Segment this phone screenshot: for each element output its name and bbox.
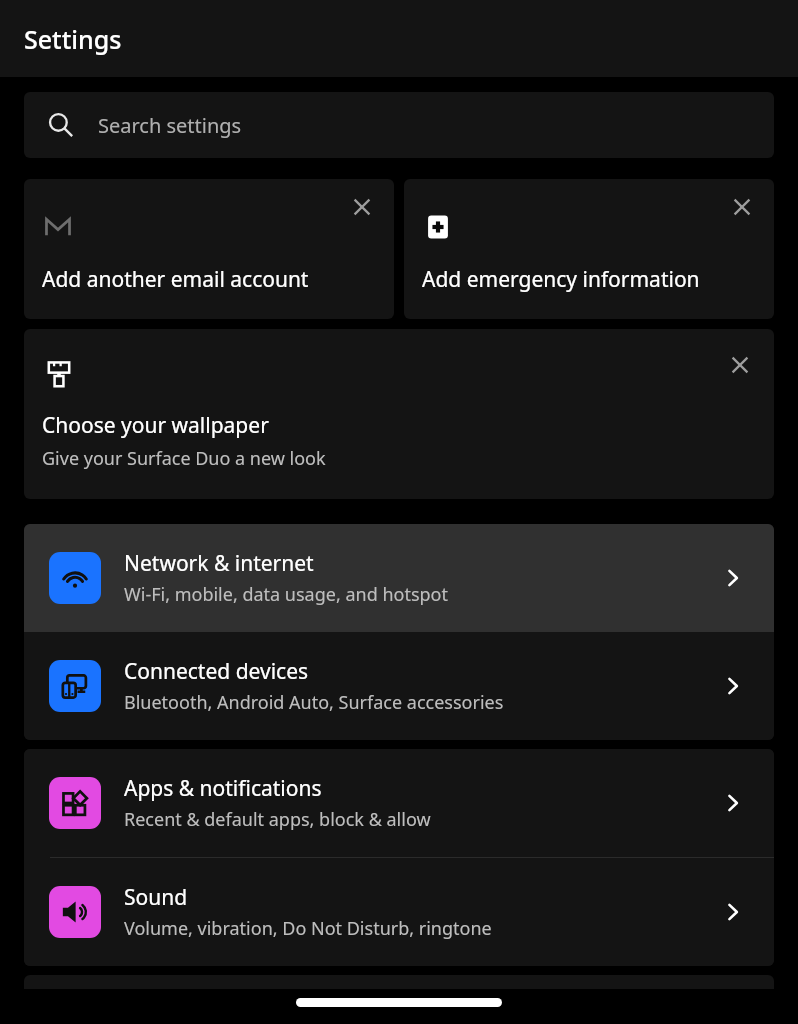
staticText: Volume, vibration, Do Not Disturb, ringt…	[124, 916, 492, 941]
staticText: Apps & notifications	[124, 774, 322, 803]
staticText: Settings	[24, 22, 122, 56]
button[interactable]: Apps & notifications	[24, 749, 774, 857]
button[interactable]: Add another email account	[24, 179, 394, 319]
staticText: Sound	[124, 883, 188, 912]
button[interactable]: Network & internet	[24, 524, 774, 632]
button[interactable]: Connected devices	[24, 632, 774, 740]
staticText: Add another email account	[42, 265, 309, 294]
staticText: Connected devices	[124, 657, 309, 686]
button[interactable]: Dismiss	[720, 185, 764, 229]
button[interactable]: Add emergency information	[404, 179, 774, 319]
staticText: Search settings	[98, 112, 242, 139]
button[interactable]: Choose your wallpaper	[24, 329, 774, 499]
button[interactable]: Search settings	[24, 92, 774, 158]
staticText: Add emergency information	[422, 265, 700, 294]
staticText: Choose your wallpaper	[42, 411, 269, 440]
button[interactable]: Sound	[24, 858, 774, 966]
button[interactable]: Dismiss	[340, 185, 384, 229]
staticText: Recent & default apps, block & allow	[124, 807, 431, 832]
staticText: Wi-Fi, mobile, data usage, and hotspot	[124, 582, 448, 607]
staticText: Bluetooth, Android Auto, Surface accesso…	[124, 690, 504, 715]
button[interactable]: Dismiss	[718, 343, 762, 387]
staticText: Give your Surface Duo a new look	[42, 446, 326, 471]
staticText: Network & internet	[124, 549, 314, 578]
